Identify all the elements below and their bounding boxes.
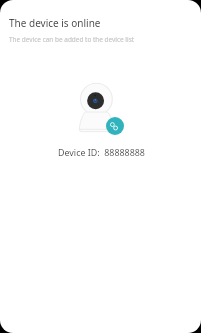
staticText: The device is online	[9, 16, 101, 30]
staticText: The device can be added to the device li…	[9, 35, 135, 44]
staticText: Device ID: 88888888	[58, 146, 145, 158]
